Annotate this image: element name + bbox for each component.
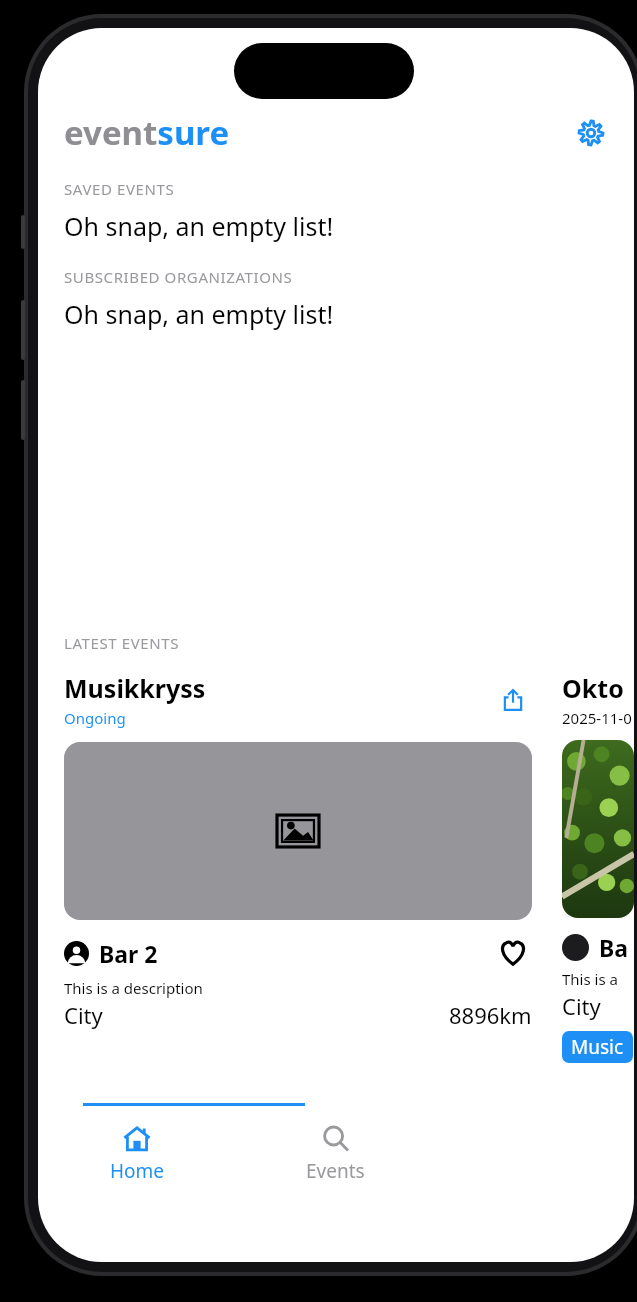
staticText: Musikkryss <box>64 671 206 705</box>
staticText: 2025-11-02 <box>562 708 634 728</box>
button[interactable]: Oktoberfest <box>562 671 634 1063</box>
staticText: Ongoing <box>64 708 126 728</box>
staticText: This is a description <box>64 978 203 998</box>
staticText: SUBSCRIBED ORGANIZATIONS <box>64 267 293 287</box>
staticText: Oh snap, an empty list! <box>64 297 334 331</box>
staticText: Home <box>110 1158 165 1184</box>
staticText: LATEST EVENTS <box>64 633 180 653</box>
staticText: SAVED EVENTS <box>64 179 175 199</box>
staticText: City <box>64 1000 103 1030</box>
staticText: eventsure <box>64 110 230 155</box>
staticText: City <box>562 991 601 1021</box>
staticText: 8896km <box>449 1000 532 1030</box>
staticText: This is a description <box>562 969 634 989</box>
staticText: Events <box>306 1158 365 1184</box>
staticText: Music <box>571 1034 624 1060</box>
button[interactable]: Home <box>38 1120 236 1188</box>
button[interactable]: Share <box>494 681 532 719</box>
button[interactable]: Settings <box>570 112 612 154</box>
button[interactable]: Musikkryss <box>64 671 532 1030</box>
button[interactable]: Favorite <box>494 934 532 972</box>
button[interactable]: Events <box>236 1120 435 1188</box>
staticText: Oktoberfest <box>562 671 634 705</box>
staticText: Bar 1 <box>599 932 634 963</box>
staticText: Oh snap, an empty list! <box>64 209 334 243</box>
staticText: Bar 2 <box>99 938 158 969</box>
